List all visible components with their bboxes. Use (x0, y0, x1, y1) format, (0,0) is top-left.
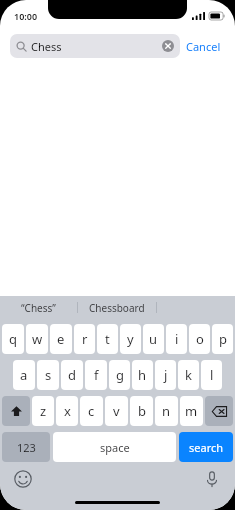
staticText: search (189, 440, 224, 455)
button[interactable]: o (189, 324, 210, 354)
button[interactable]: n (155, 396, 178, 426)
staticText: Chess (31, 39, 62, 54)
button[interactable]: Emoji keyboard (14, 470, 32, 488)
staticText: j (164, 366, 168, 384)
staticText: 10:00 (14, 10, 38, 22)
staticText: i (175, 330, 179, 348)
staticText: r (82, 330, 88, 348)
staticText: a (20, 366, 28, 384)
button[interactable]: a (13, 360, 35, 390)
staticText: h (138, 366, 147, 384)
button[interactable]: k (178, 360, 199, 390)
staticText: n (162, 402, 171, 420)
button[interactable]: h (132, 360, 153, 390)
staticText: y (127, 330, 134, 348)
staticText: space (100, 440, 130, 455)
staticText: b (138, 402, 146, 420)
button[interactable]: m (180, 396, 203, 426)
button[interactable]: j (155, 360, 176, 390)
staticText: f (94, 366, 99, 384)
staticText: Chessboard (89, 301, 145, 315)
staticText: c (88, 402, 95, 420)
button[interactable]: e (50, 324, 72, 354)
button[interactable]: search (179, 432, 233, 462)
button[interactable]: y (120, 324, 141, 354)
button[interactable]: l (201, 360, 222, 390)
staticText: v (113, 402, 120, 420)
button[interactable]: r (74, 324, 95, 354)
button[interactable]: space (53, 432, 176, 462)
button[interactable]: Chessboard (78, 296, 156, 319)
staticText: g (116, 366, 124, 384)
staticText: z (40, 402, 47, 420)
button[interactable]: i (166, 324, 187, 354)
staticText: “Chess” (21, 301, 56, 315)
button[interactable]: Clear text (162, 40, 174, 52)
button[interactable]: f (85, 360, 107, 390)
staticText: e (57, 330, 65, 348)
button[interactable]: Dictation (203, 470, 221, 488)
staticText: t (105, 330, 110, 348)
button[interactable]: Cancel (180, 35, 227, 58)
staticText: d (68, 366, 76, 384)
button[interactable]: u (143, 324, 164, 354)
staticText: Cancel (186, 39, 221, 54)
button[interactable]: s (37, 360, 59, 390)
staticText: u (149, 330, 158, 348)
button[interactable]: d (61, 360, 83, 390)
button[interactable]: Backspace (205, 396, 233, 426)
staticText: p (219, 330, 227, 348)
button[interactable]: 123 (2, 432, 50, 462)
button[interactable]: Shift (2, 396, 30, 426)
button[interactable]: x (56, 396, 78, 426)
button[interactable]: b (130, 396, 153, 426)
button[interactable]: z (32, 396, 54, 426)
button[interactable]: t (97, 324, 118, 354)
button[interactable]: v (105, 396, 128, 426)
staticText: x (64, 402, 71, 420)
staticText: m (185, 402, 198, 420)
button[interactable]: q (2, 324, 24, 354)
staticText: s (45, 366, 52, 384)
button[interactable]: Chess (10, 34, 180, 58)
staticText: l (210, 366, 214, 384)
button[interactable]: w (26, 324, 48, 354)
button[interactable]: p (212, 324, 233, 354)
button[interactable]: g (109, 360, 130, 390)
staticText: k (185, 366, 192, 384)
button[interactable]: c (80, 396, 103, 426)
button[interactable]: “Chess” (0, 296, 77, 319)
staticText: w (32, 330, 43, 348)
staticText: q (9, 330, 17, 348)
staticText: o (196, 330, 204, 348)
staticText: 123 (17, 440, 36, 455)
